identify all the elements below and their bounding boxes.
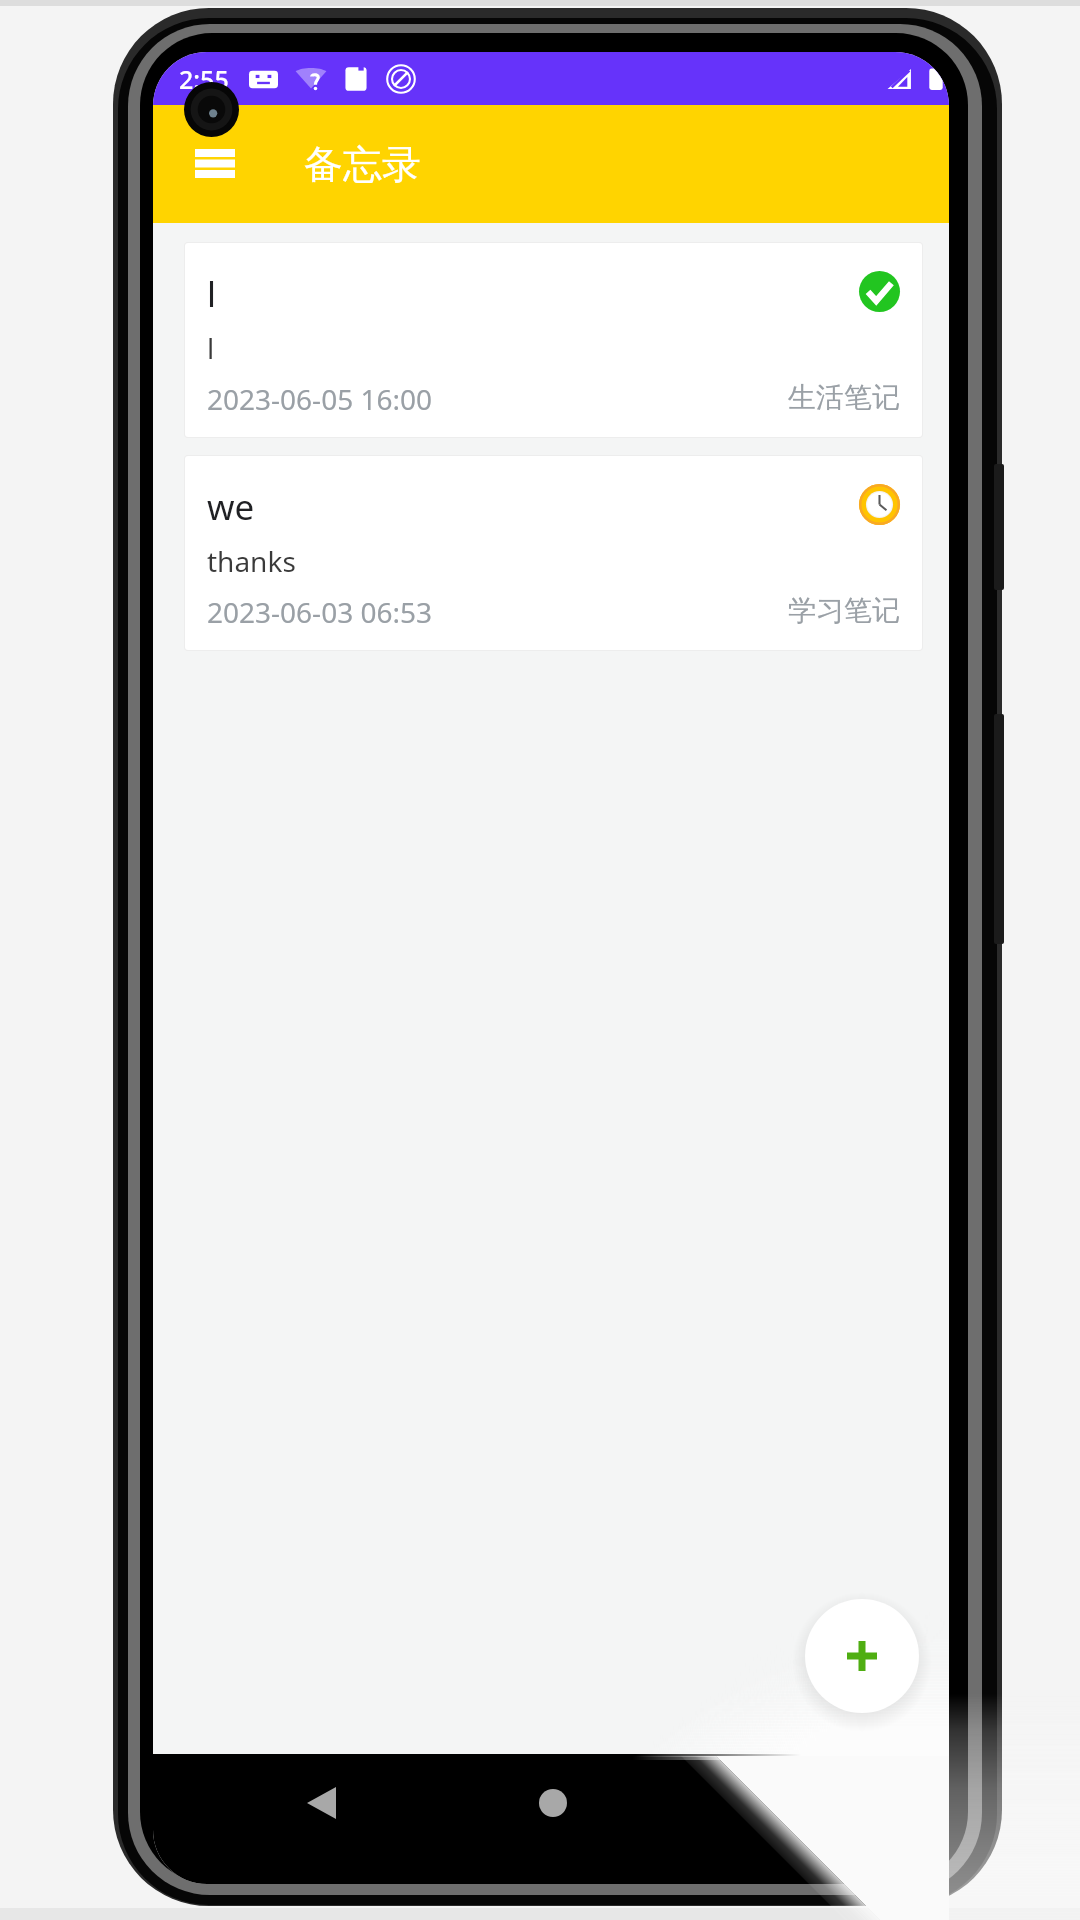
button[interactable]: Home bbox=[513, 1763, 593, 1843]
staticText: 生活笔记 bbox=[788, 380, 900, 415]
staticText: thanks bbox=[207, 542, 296, 580]
staticText: l bbox=[207, 329, 215, 367]
staticText: we bbox=[207, 483, 255, 531]
staticText: l bbox=[207, 270, 217, 318]
button[interactable]: Back bbox=[281, 1763, 361, 1843]
button[interactable]: l bbox=[185, 243, 922, 437]
button[interactable]: Menu bbox=[184, 132, 246, 194]
button[interactable]: Add note bbox=[805, 1599, 919, 1713]
staticText: 2:55 bbox=[179, 62, 229, 96]
staticText: 2023-06-03 06:53 bbox=[207, 593, 433, 631]
staticText: 2023-06-05 16:00 bbox=[207, 380, 433, 418]
staticText: 学习笔记 bbox=[788, 593, 900, 628]
staticText: 备忘录 bbox=[304, 140, 421, 189]
button[interactable]: we bbox=[185, 456, 922, 650]
